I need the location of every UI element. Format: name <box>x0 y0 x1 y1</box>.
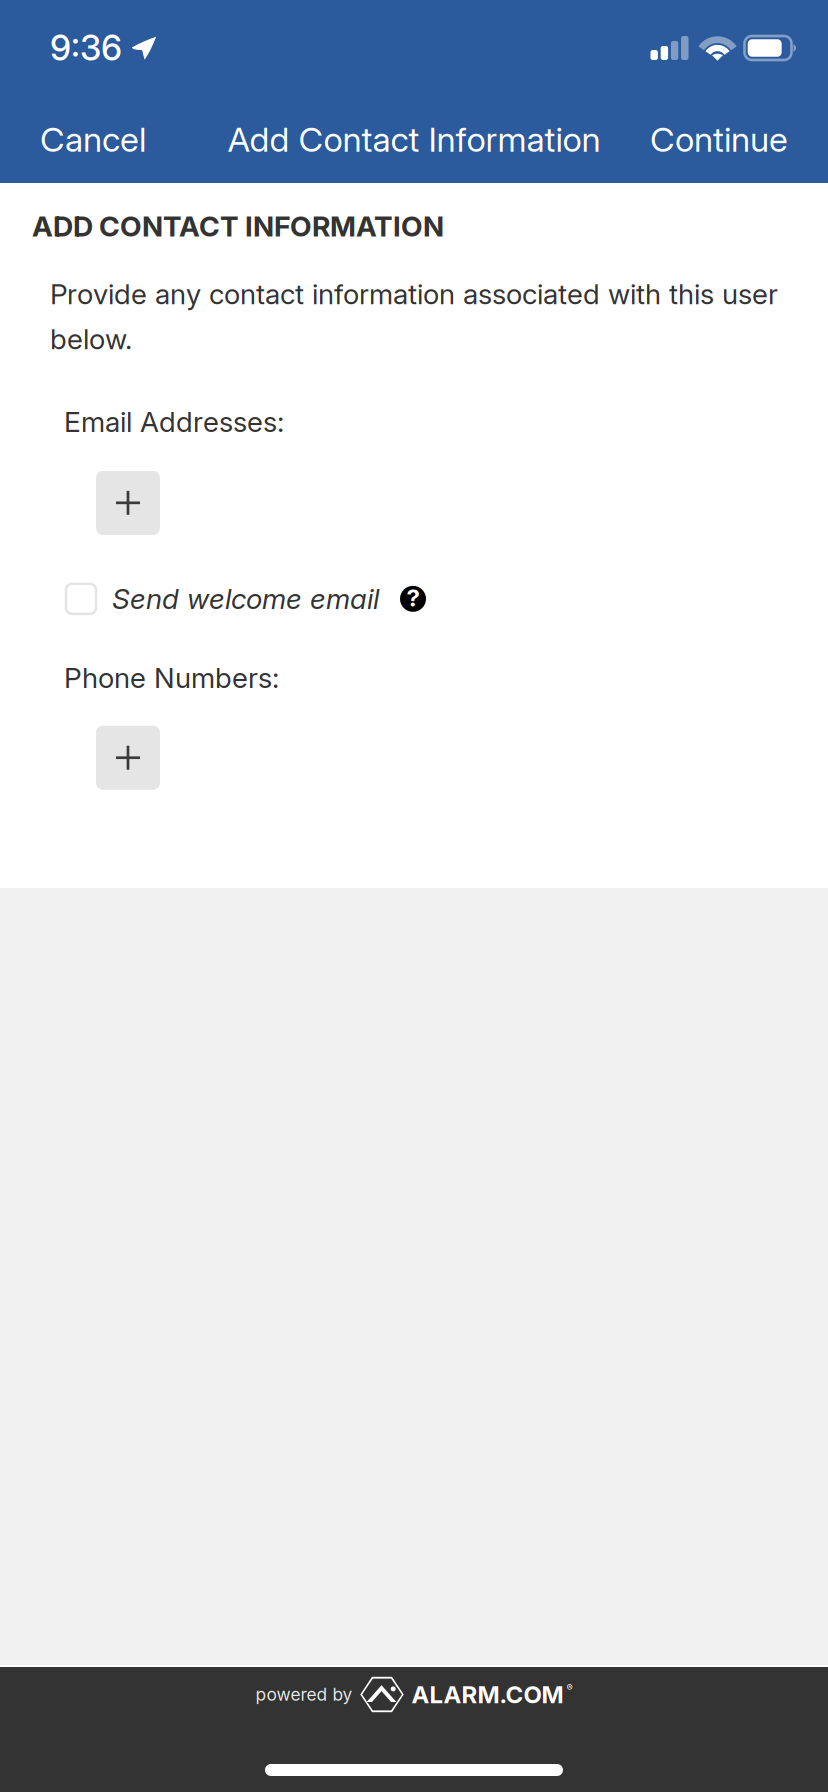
staticText: Send welcome email <box>112 582 379 616</box>
staticText: ALARM.COM <box>411 1680 563 1709</box>
button[interactable]: Send welcome email <box>65 583 97 615</box>
button[interactable]: Add <box>96 726 160 790</box>
staticText: Phone Numbers: <box>64 661 279 695</box>
staticText: Provide any contact information associat… <box>50 277 778 356</box>
button[interactable]: Help <box>400 586 426 612</box>
staticText: 9:36 <box>50 27 122 69</box>
staticText: Email Addresses: <box>64 405 284 439</box>
staticText: ADD CONTACT INFORMATION <box>32 209 444 243</box>
staticText: Add Contact Information <box>227 119 600 160</box>
button[interactable]: powered by <box>255 1667 572 1713</box>
staticText: Continue <box>650 119 788 160</box>
staticText: ® <box>566 1682 572 1693</box>
button[interactable]: Cancel <box>38 103 148 176</box>
staticText: powered by <box>255 1684 352 1705</box>
staticText: ? <box>406 583 419 612</box>
staticText: Cancel <box>40 119 146 160</box>
button[interactable]: Continue <box>648 103 790 176</box>
button[interactable]: Add <box>96 471 160 535</box>
